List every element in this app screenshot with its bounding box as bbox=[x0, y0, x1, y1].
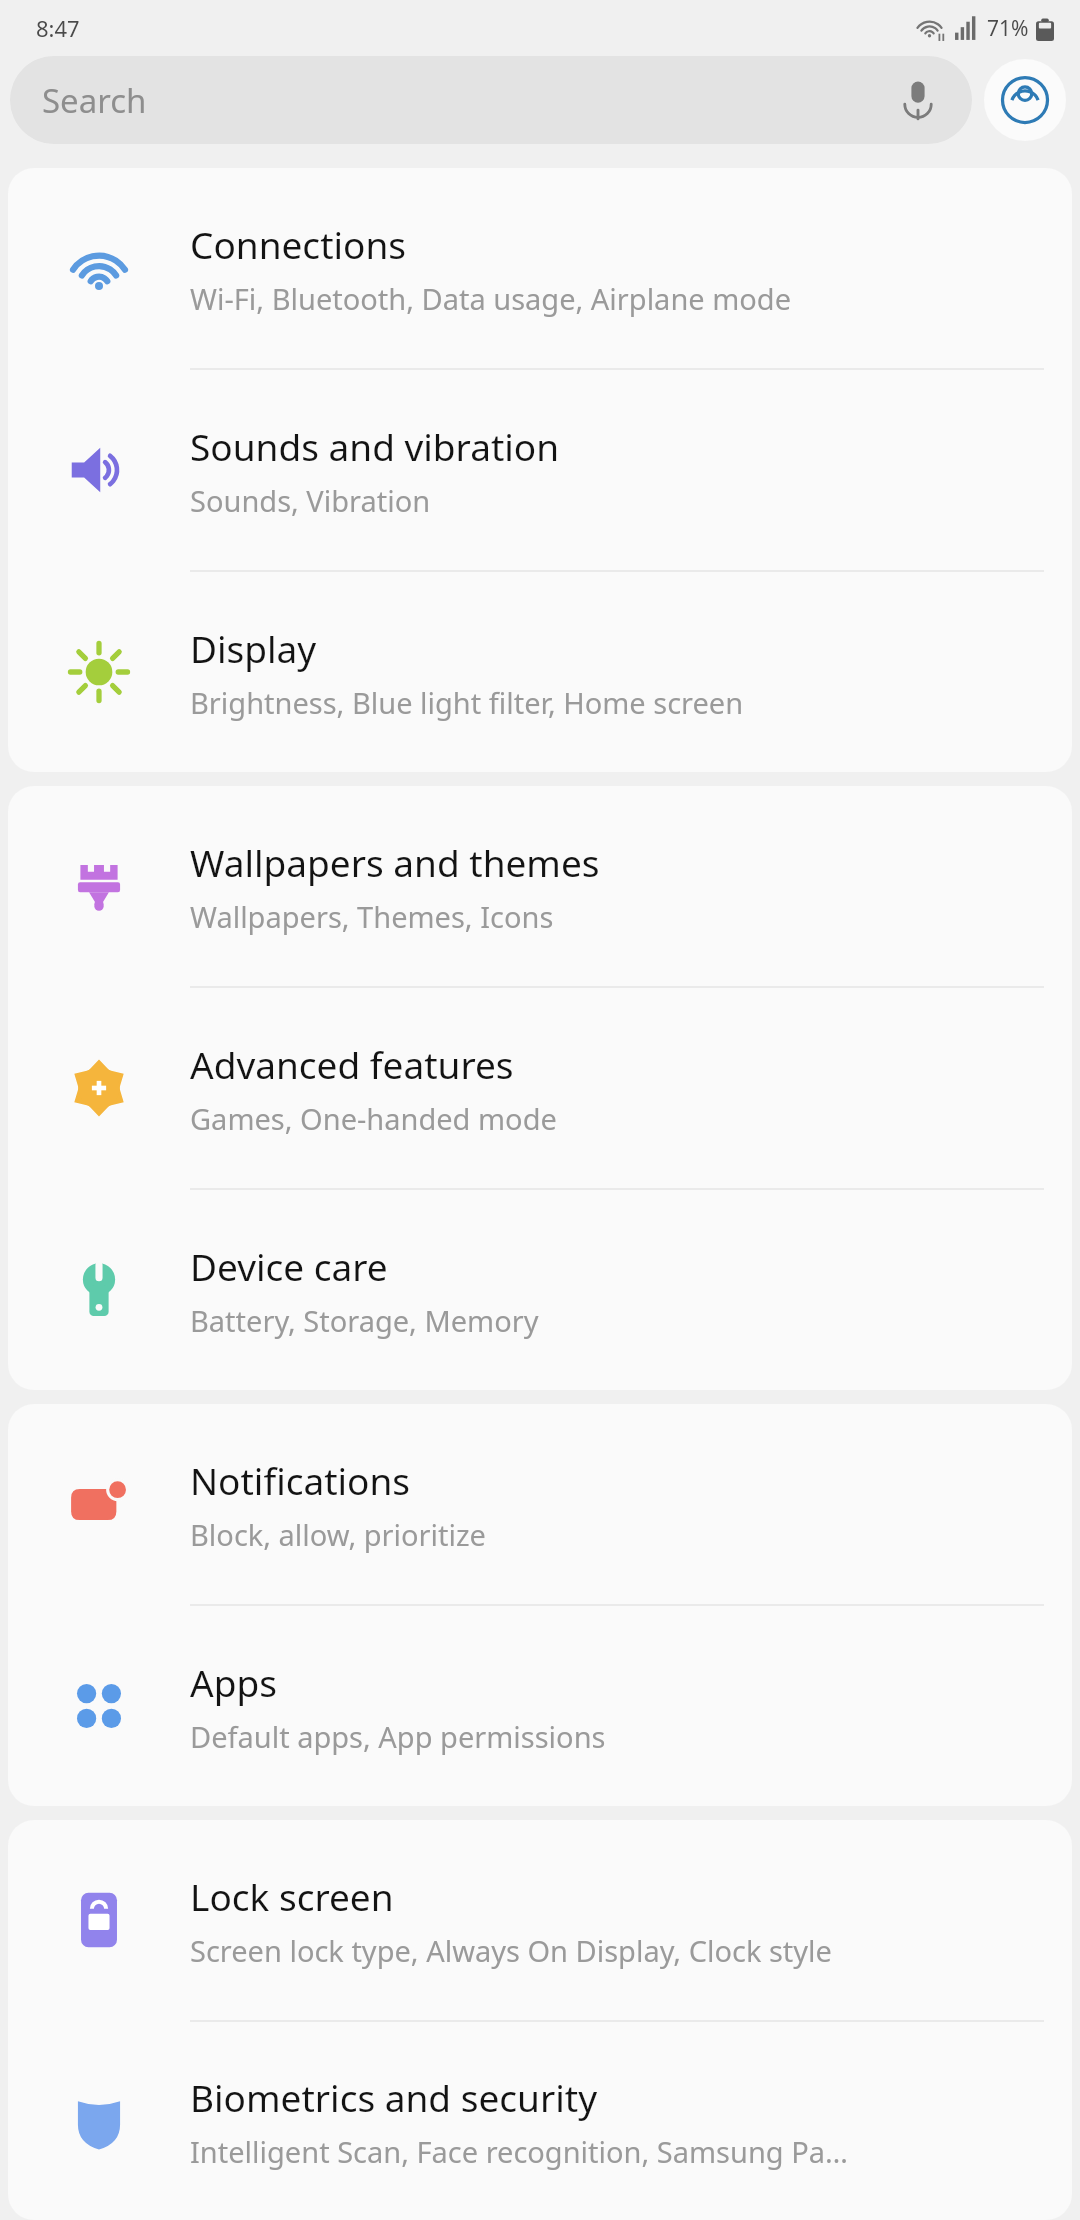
button[interactable]: Connections bbox=[8, 168, 1072, 368]
staticText: Biometrics and security bbox=[190, 2072, 597, 2122]
button[interactable]: Biometrics and security bbox=[8, 2022, 1072, 2220]
button[interactable]: Notifications bbox=[8, 1404, 1072, 1604]
staticText: Device care bbox=[190, 1241, 388, 1291]
staticText: Games, One-handed mode bbox=[190, 1099, 557, 1138]
staticText: Display bbox=[190, 623, 317, 673]
button[interactable]: Sounds and vibration bbox=[8, 370, 1072, 570]
staticText: Wi-Fi, Bluetooth, Data usage, Airplane m… bbox=[190, 279, 792, 318]
staticText: Wallpapers, Themes, Icons bbox=[190, 897, 554, 936]
staticText: Wallpapers and themes bbox=[190, 837, 600, 887]
staticText: Default apps, App permissions bbox=[190, 1717, 606, 1756]
staticText: Intelligent Scan, Face recognition, Sams… bbox=[190, 2132, 848, 2171]
staticText: Block, allow, prioritize bbox=[190, 1515, 486, 1554]
staticText: Connections bbox=[190, 219, 407, 269]
staticText: 71% bbox=[987, 14, 1029, 43]
staticText: Search bbox=[42, 78, 890, 123]
staticText: Notifications bbox=[190, 1455, 411, 1505]
button[interactable]: Apps bbox=[8, 1606, 1072, 1806]
button[interactable]: Device care bbox=[8, 1190, 1072, 1390]
button[interactable]: Advanced features bbox=[8, 988, 1072, 1188]
button[interactable]: Lock screen bbox=[8, 1820, 1072, 2020]
staticText: Sounds, Vibration bbox=[190, 481, 431, 520]
button[interactable]: Account bbox=[984, 59, 1066, 141]
button[interactable]: Search bbox=[10, 56, 972, 144]
staticText: Battery, Storage, Memory bbox=[190, 1301, 539, 1340]
staticText: Screen lock type, Always On Display, Clo… bbox=[190, 1931, 832, 1970]
button[interactable]: Display bbox=[8, 572, 1072, 772]
staticText: Lock screen bbox=[190, 1871, 394, 1921]
staticText: Advanced features bbox=[190, 1039, 514, 1089]
button[interactable]: Voice search bbox=[890, 72, 946, 128]
button[interactable]: Wallpapers and themes bbox=[8, 786, 1072, 986]
staticText: Brightness, Blue light filter, Home scre… bbox=[190, 683, 744, 722]
staticText: Apps bbox=[190, 1657, 277, 1707]
staticText: 8:47 bbox=[36, 13, 80, 43]
staticText: Sounds and vibration bbox=[190, 421, 560, 471]
